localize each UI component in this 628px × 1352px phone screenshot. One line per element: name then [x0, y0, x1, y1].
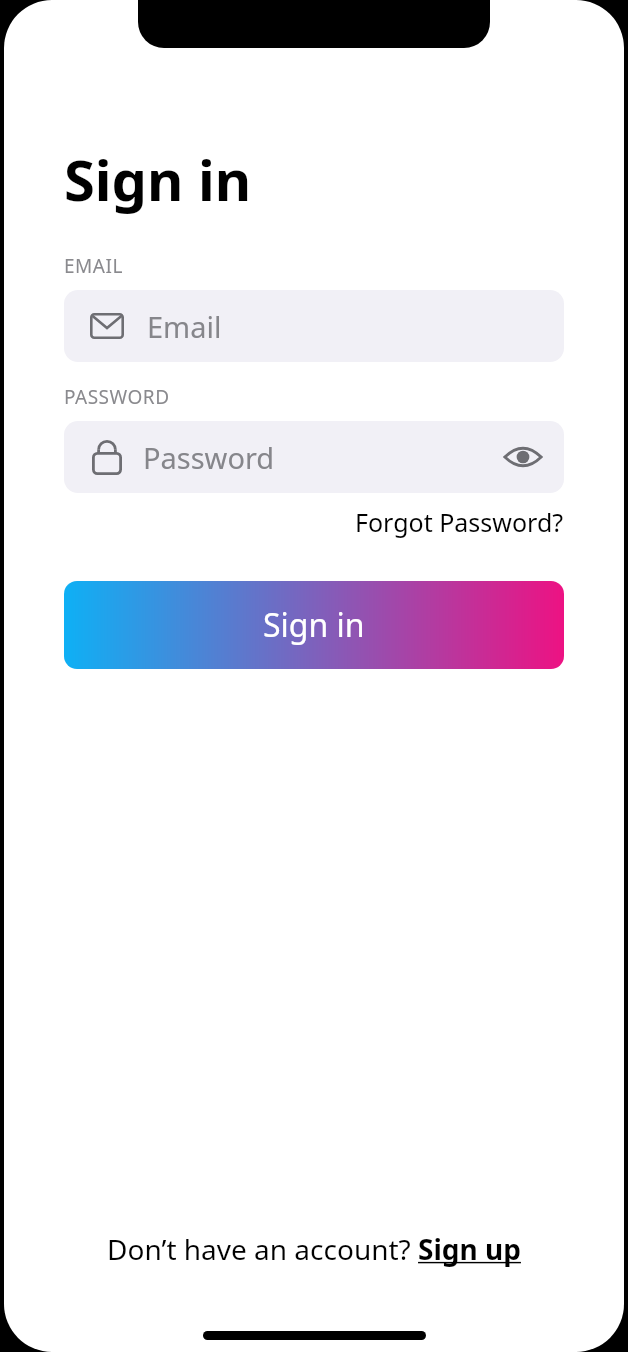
button[interactable]: Forgot Password? — [355, 505, 564, 539]
staticText: Sign in — [64, 141, 252, 217]
button[interactable]: Password — [64, 421, 564, 493]
button[interactable]: Don’t have an account? Sign up — [107, 1230, 521, 1268]
staticText: EMAIL — [64, 253, 123, 279]
button[interactable]: Sign in — [64, 581, 564, 669]
staticText: Email — [147, 307, 222, 346]
button[interactable]: Email — [64, 290, 564, 362]
staticText: PASSWORD — [64, 384, 170, 410]
staticText: Password — [143, 438, 275, 477]
button[interactable]: Show password — [495, 429, 551, 485]
staticText: Don’t have an account? Sign up — [107, 1230, 521, 1268]
staticText: Forgot Password? — [355, 505, 564, 539]
staticText: Sign in — [263, 603, 365, 647]
